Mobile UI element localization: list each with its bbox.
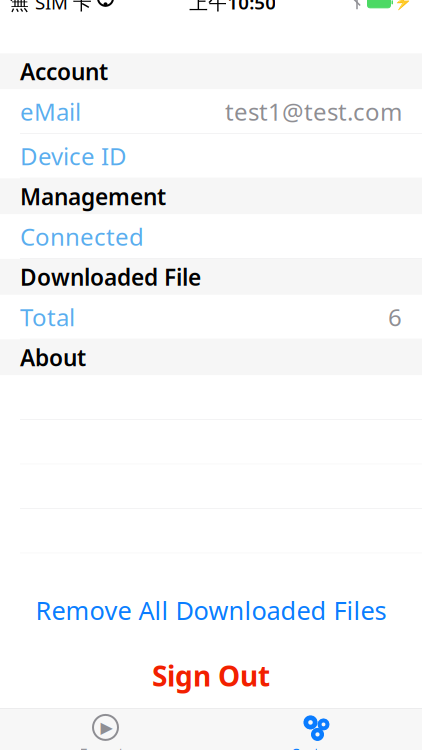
staticText: Connected xyxy=(20,220,144,252)
button[interactable]: Connected xyxy=(0,214,422,259)
staticText: Total xyxy=(20,301,75,333)
button[interactable]: Remove All Downloaded Files xyxy=(0,587,422,633)
button[interactable]: System xyxy=(211,708,422,750)
staticText: Remove All Downloaded Files xyxy=(35,593,386,627)
staticText: eMail xyxy=(20,95,81,127)
staticText: test1@test.com xyxy=(225,95,402,127)
staticText: Sign Out xyxy=(152,657,270,694)
staticText: ⚡ xyxy=(394,0,412,11)
staticText: Downloaded File xyxy=(20,262,201,292)
staticText: Account xyxy=(20,56,108,86)
staticText: About xyxy=(20,342,86,372)
button[interactable]: Sign Out xyxy=(0,651,422,700)
staticText: System xyxy=(292,743,341,750)
staticText: Device ID xyxy=(20,140,127,172)
button[interactable]: Total xyxy=(0,295,422,339)
staticText: 無 SIM 卡 xyxy=(10,0,92,15)
button[interactable]: Device ID xyxy=(0,134,422,178)
staticText: Execute xyxy=(79,743,131,750)
staticText: 6 xyxy=(388,301,402,333)
staticText: 上午10:50 xyxy=(189,0,276,15)
staticText: ▶ xyxy=(100,718,112,736)
button[interactable]: eMail xyxy=(0,89,422,134)
staticText: Management xyxy=(20,181,166,211)
button[interactable]: ▶ xyxy=(0,708,211,750)
